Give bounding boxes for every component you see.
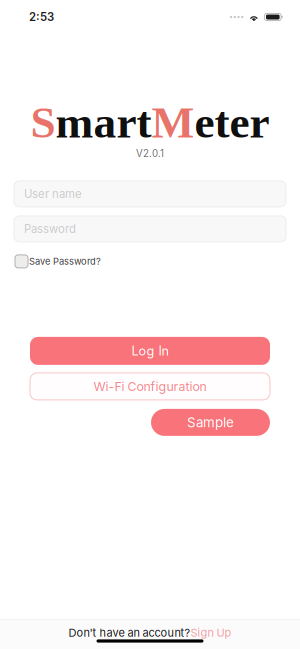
- staticText: eter: [194, 97, 269, 147]
- button[interactable]: Sign Up: [190, 626, 231, 639]
- staticText: Password: [24, 222, 76, 236]
- staticText: mart: [55, 97, 151, 147]
- staticText: Wi-Fi Configuration: [93, 379, 206, 394]
- staticText: Sign Up: [190, 626, 231, 639]
- staticText: V2.0.1: [136, 148, 164, 159]
- button[interactable]: Sample: [151, 409, 270, 436]
- staticText: Log In: [131, 343, 168, 358]
- staticText: Sample: [187, 414, 234, 430]
- button[interactable]: Log In: [30, 337, 270, 365]
- button[interactable]: Save Password?: [0, 242, 300, 268]
- staticText: S: [30, 97, 55, 147]
- staticText: Don't have an account?: [68, 626, 190, 639]
- staticText: M: [151, 97, 194, 147]
- staticText: User name: [24, 187, 82, 201]
- staticText: Save Password?: [29, 256, 101, 267]
- staticText: 2:53: [29, 10, 54, 24]
- button[interactable]: Wi-Fi Configuration: [30, 373, 270, 400]
